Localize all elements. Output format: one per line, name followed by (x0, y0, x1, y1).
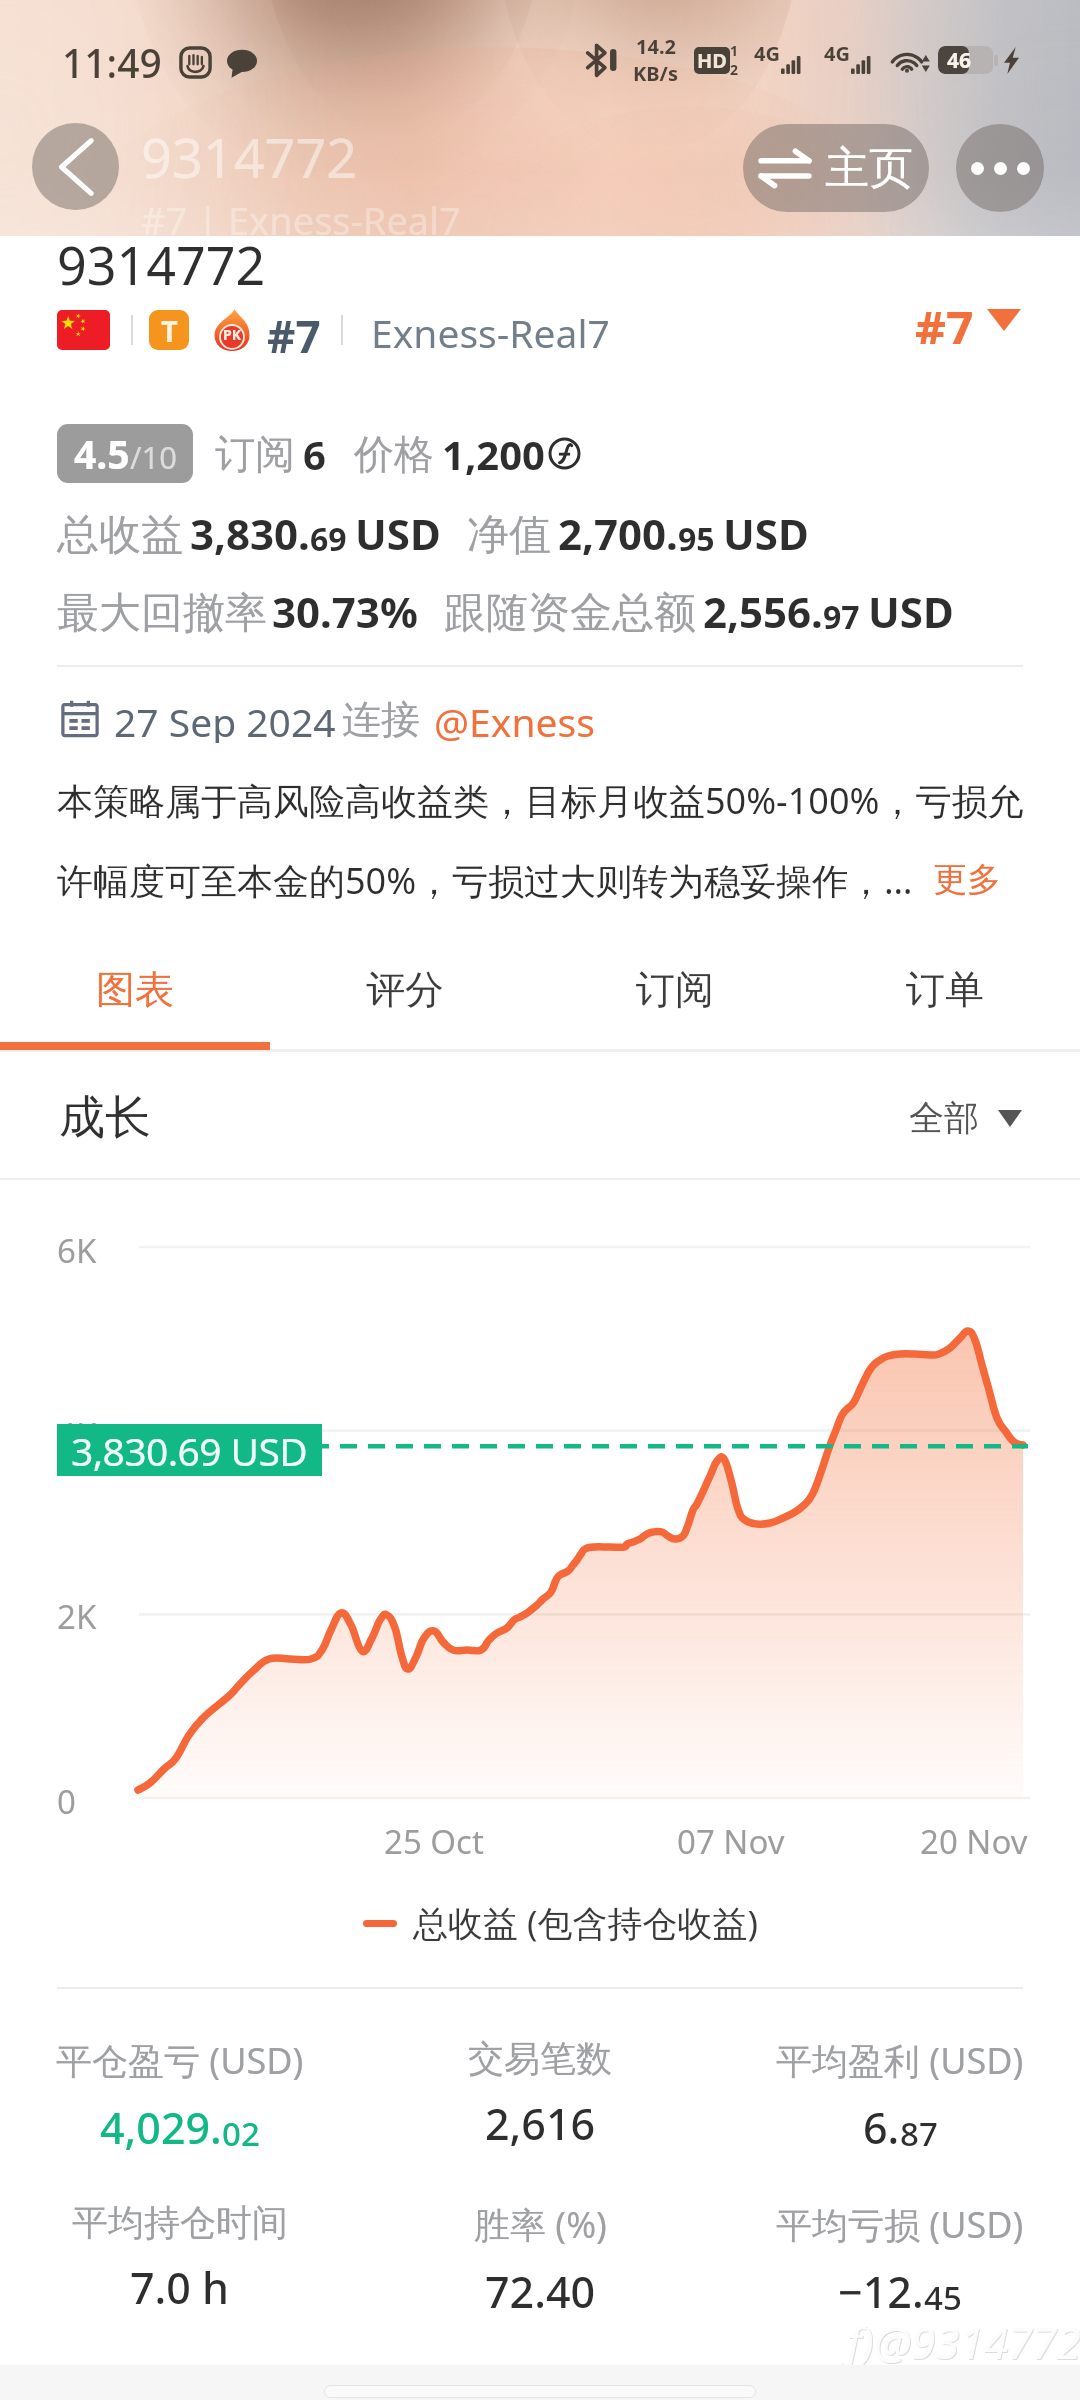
staticText: 跟随资金总额 (444, 587, 696, 640)
button[interactable]: 主页 (743, 124, 929, 212)
staticText: 69 (310, 517, 347, 561)
button[interactable]: #7 (915, 296, 1021, 344)
staticText: USD (868, 583, 954, 640)
staticText: 9314772 (57, 229, 266, 300)
staticText: 总收益 (包含持仓收益) (413, 1899, 759, 1947)
staticText: 最大回撤率 (57, 587, 267, 640)
staticText: 3,830. (190, 505, 310, 562)
staticText: 图表 (96, 965, 174, 1014)
staticText: 97 (823, 595, 860, 639)
staticText: 4,029. (100, 2098, 222, 2157)
staticText: −12. (838, 2262, 924, 2321)
staticText: 4G (754, 40, 780, 67)
staticText: 订阅 (215, 429, 295, 479)
staticText: 价格 (354, 429, 434, 479)
staticText: 2 (730, 60, 739, 79)
staticText: USD (355, 505, 441, 562)
staticText: 9314772 (141, 120, 358, 194)
staticText: 交易笔数 (468, 2036, 612, 2081)
staticText: 全部 (909, 1096, 979, 1140)
staticText: 连接 (342, 695, 420, 743)
staticText: 评分 (366, 965, 444, 1014)
staticText: KB/s (633, 60, 678, 87)
button[interactable]: Back (32, 123, 119, 210)
staticText: 订阅 (636, 965, 714, 1014)
staticText: USD (723, 505, 809, 562)
staticText: 3,830.69 USD (71, 1424, 308, 1476)
button[interactable]: 订单 (810, 946, 1080, 1032)
button[interactable]: 图表 (0, 946, 270, 1032)
staticText: 本策略属于高风险高收益类，目标月收益50%-100%，亏损允 (57, 776, 1024, 825)
staticText: 72.40 (485, 2262, 596, 2321)
button[interactable]: 更多 (925, 850, 1009, 909)
staticText: 平仓盈亏 (USD) (56, 2036, 304, 2085)
staticText: 02 (222, 2111, 260, 2156)
staticText: 95 (678, 517, 715, 561)
staticText: 平均持仓时间 (72, 2200, 288, 2245)
staticText: 净值 (467, 509, 551, 562)
staticText: #7 | Exness-Real7 (141, 194, 461, 236)
staticText: 2,700. (558, 505, 678, 562)
staticText: 46 (947, 46, 972, 74)
staticText: 胜率 (%) (474, 2200, 607, 2249)
staticText: #7 (915, 296, 974, 344)
staticText: 25 Oct (384, 1819, 484, 1864)
staticText: 30.73% (272, 583, 418, 640)
staticText: 1 (730, 41, 739, 60)
staticText: 11:49 (62, 36, 162, 89)
staticText: Exness-Real7 (371, 306, 610, 354)
button[interactable]: 评分 (270, 946, 540, 1032)
staticText: 平均盈利 (USD) (776, 2036, 1024, 2085)
staticText: ƒ)@9314772 (843, 2312, 1080, 2372)
staticText: 0 (57, 1779, 76, 1824)
staticText: 20 Nov (920, 1819, 1028, 1864)
staticText: 2,616 (485, 2094, 596, 2153)
staticText: 订单 (906, 965, 984, 1014)
staticText: T (161, 311, 178, 350)
staticText: 总收益 (57, 509, 183, 562)
staticText: 45 (924, 2275, 962, 2320)
staticText: 87 (900, 2111, 938, 2156)
staticText: 2,556. (703, 583, 823, 640)
staticText: 成长 (59, 1089, 151, 1147)
button[interactable]: 订阅 (540, 946, 810, 1032)
staticText: PK (223, 325, 241, 344)
button[interactable]: 全部 (909, 1096, 1022, 1140)
button[interactable]: More options (956, 124, 1044, 212)
staticText: 4G (824, 40, 850, 67)
staticText: 许幅度可至本金的50%，亏损过大则转为稳妥操作，… (57, 856, 913, 905)
staticText: 4.5 (74, 427, 130, 480)
staticText: 6 (303, 427, 326, 481)
staticText: ƒ)@9314772 (844, 2313, 1080, 2373)
staticText: #7 (267, 306, 321, 354)
staticText: 1,200 (442, 427, 545, 481)
staticText: 主页 (825, 141, 913, 196)
staticText: 6K (57, 1228, 97, 1273)
staticText: @Exness (434, 695, 595, 743)
staticText: 07 Nov (677, 1819, 785, 1864)
staticText: 27 Sep 2024 (114, 695, 336, 743)
staticText: 更多 (933, 858, 1001, 901)
staticText: /10 (130, 436, 177, 478)
staticText: 7.0 h (130, 2258, 230, 2317)
staticText: 2K (57, 1594, 97, 1639)
staticText: HD (697, 47, 727, 74)
staticText: 4K (57, 1412, 97, 1457)
staticText: 平均亏损 (USD) (776, 2200, 1024, 2249)
staticText: 14.2 (636, 33, 676, 60)
staticText: 6. (863, 2098, 900, 2157)
